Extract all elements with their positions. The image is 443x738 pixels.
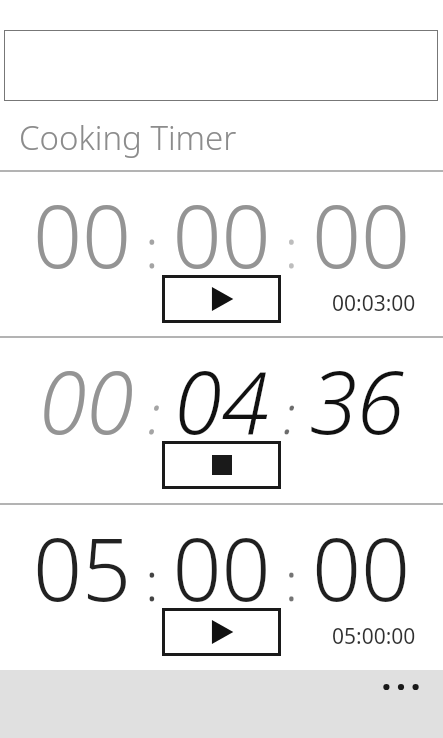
button[interactable]: 00 : 00 : 00 bbox=[0, 170, 443, 336]
staticText: 00 : 04 : 36 bbox=[39, 342, 405, 459]
staticText: 05:00:00 bbox=[332, 622, 416, 651]
button[interactable]: 05 : 00 : 00 bbox=[0, 503, 443, 670]
button[interactable]: 00 : 04 : 36 bbox=[0, 336, 443, 503]
button[interactable]: More options bbox=[375, 670, 427, 704]
button[interactable]: Start timer bbox=[162, 608, 281, 656]
staticText: 00 : 00 : 00 bbox=[33, 176, 411, 293]
button[interactable] bbox=[4, 30, 438, 101]
button[interactable]: Start timer bbox=[162, 275, 281, 323]
staticText: 05 : 00 : 00 bbox=[33, 509, 411, 626]
staticText: 00:03:00 bbox=[332, 289, 416, 318]
staticText: Cooking Timer bbox=[19, 115, 237, 160]
button[interactable]: Stop timer bbox=[162, 441, 281, 489]
